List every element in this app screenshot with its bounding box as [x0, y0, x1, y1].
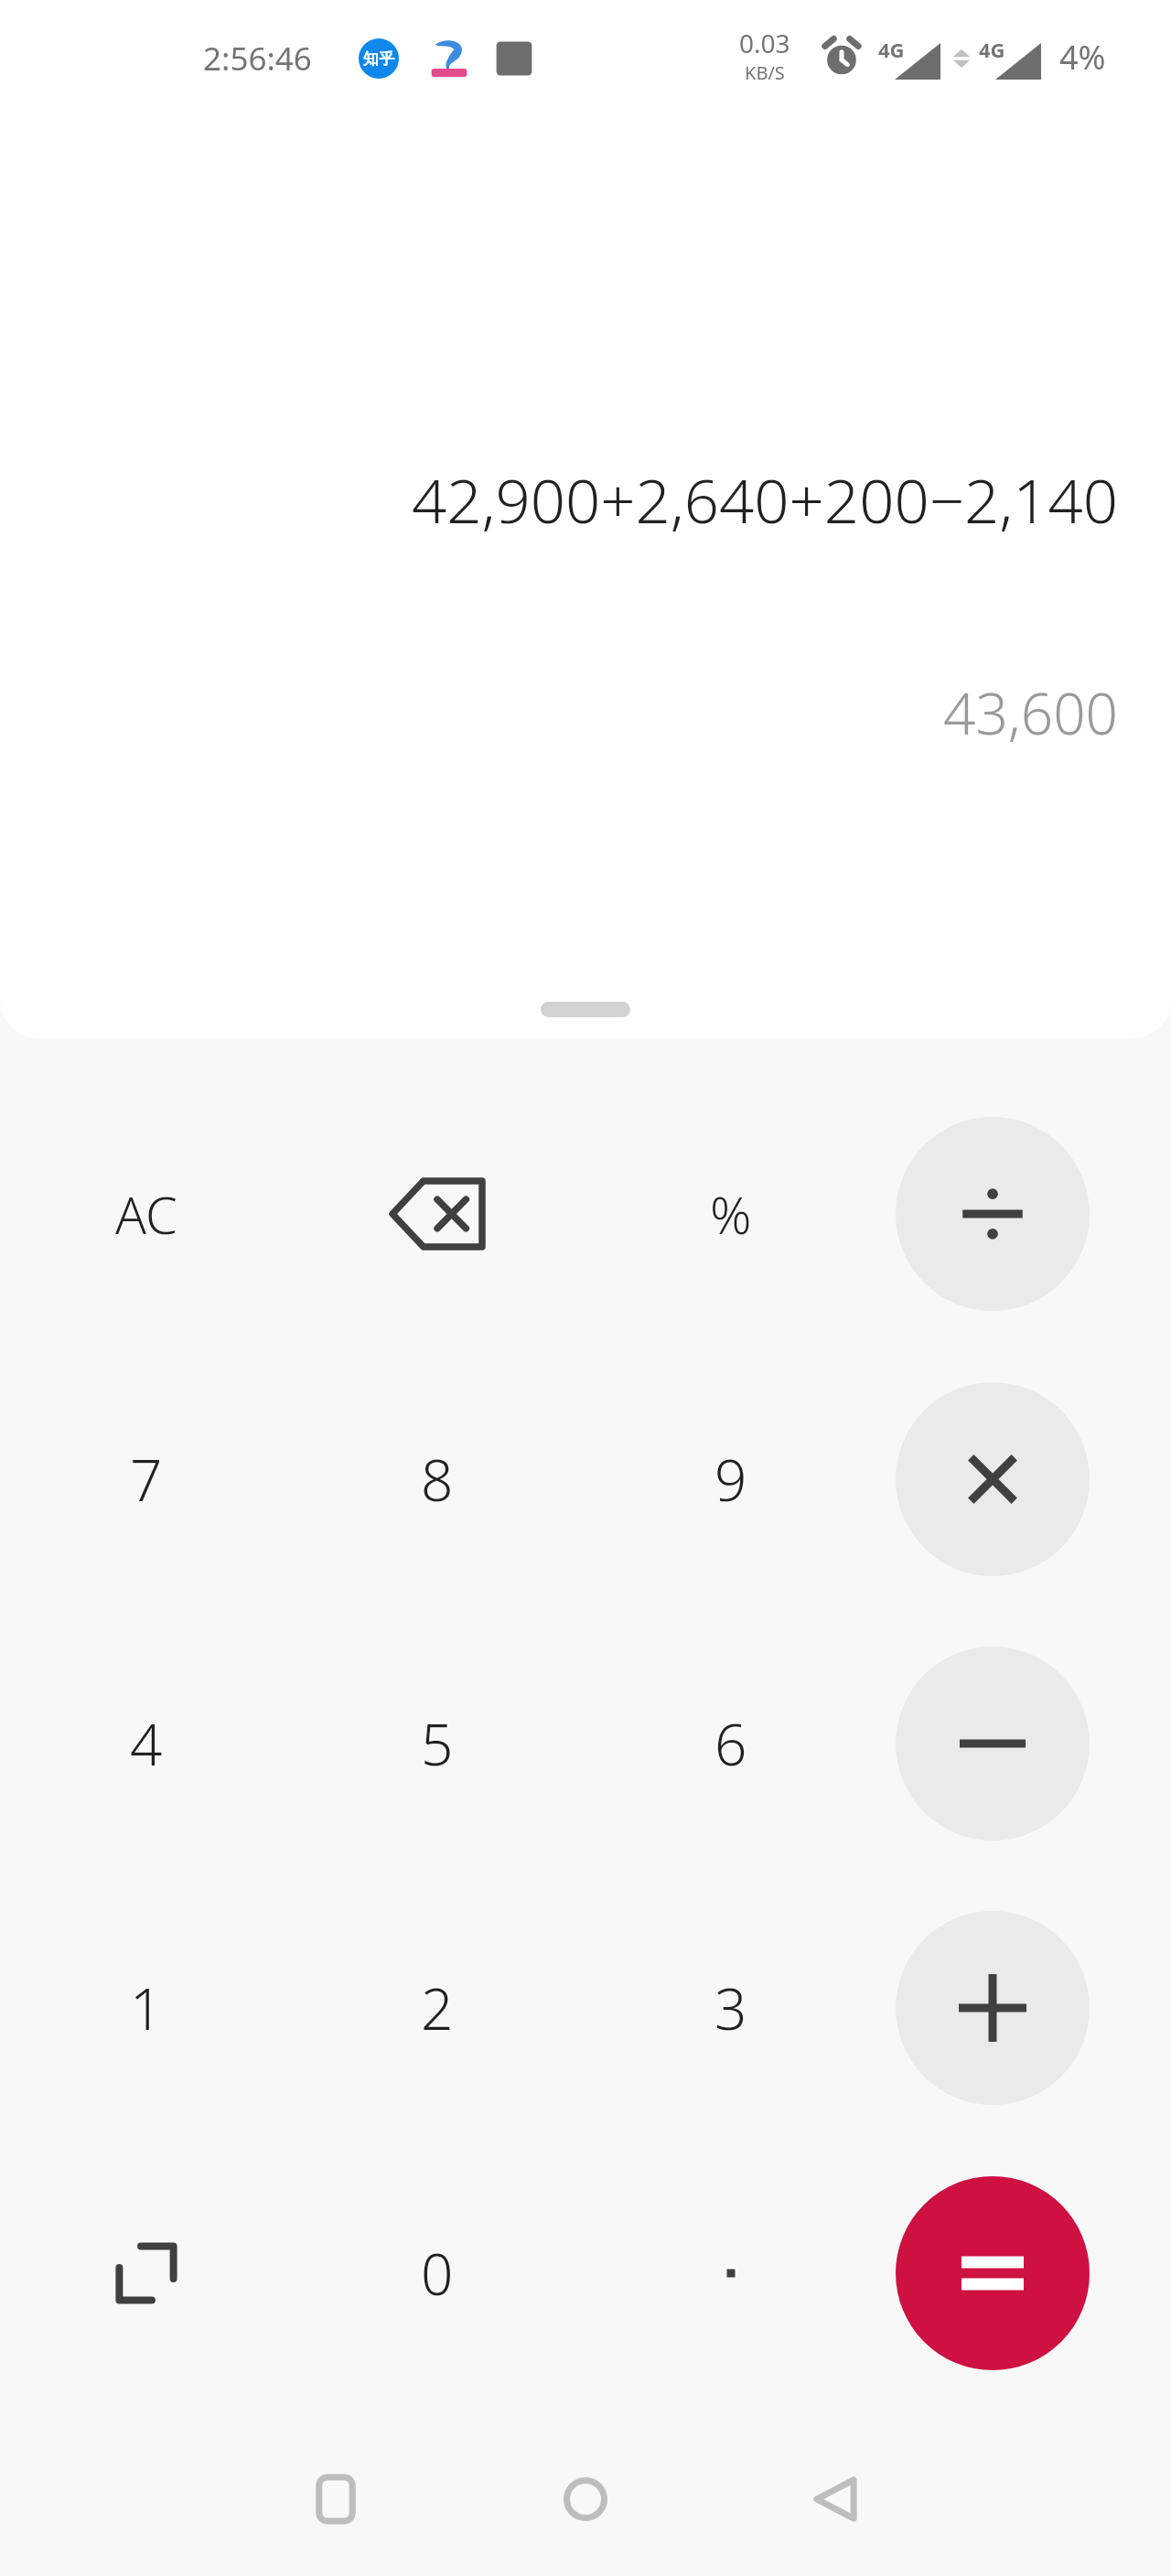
- button[interactable]: 2: [332, 1903, 543, 2113]
- button[interactable]: Decimal point: [626, 2168, 836, 2378]
- button[interactable]: %: [626, 1109, 836, 1319]
- staticText: 4G: [878, 36, 905, 63]
- staticText: 4%: [1059, 35, 1106, 80]
- button[interactable]: Recent apps: [285, 2449, 386, 2549]
- button[interactable]: 8: [332, 1374, 543, 1584]
- button[interactable]: 1: [41, 1903, 252, 2113]
- staticText: 知乎: [363, 49, 394, 69]
- button[interactable]: Expand: [41, 2168, 252, 2378]
- button[interactable]: AC: [41, 1109, 252, 1319]
- staticText: 1: [130, 1970, 163, 2046]
- button[interactable]: Backspace: [332, 1109, 543, 1319]
- button[interactable]: Divide: [896, 1117, 1090, 1311]
- button[interactable]: 9: [626, 1374, 836, 1584]
- staticText: 3: [714, 1970, 747, 2046]
- staticText: 42,900+2,640+200−2,140: [411, 457, 1118, 541]
- staticText: 4: [130, 1705, 163, 1782]
- staticText: 2:56:46: [203, 37, 312, 80]
- staticText: KB/S: [745, 60, 785, 85]
- staticText: 0.03: [739, 26, 790, 60]
- button[interactable]: Plus: [896, 1911, 1090, 2105]
- staticText: 7: [130, 1441, 163, 1518]
- button[interactable]: Home: [535, 2449, 636, 2549]
- staticText: 43,600: [943, 674, 1118, 751]
- button[interactable]: Back: [785, 2449, 886, 2549]
- button[interactable]: 3: [626, 1903, 836, 2113]
- button[interactable]: 7: [41, 1374, 252, 1584]
- staticText: 2: [421, 1970, 454, 2046]
- button[interactable]: 6: [626, 1638, 836, 1849]
- staticText: %: [710, 1179, 752, 1249]
- staticText: 8: [421, 1441, 454, 1518]
- staticText: 0: [421, 2235, 454, 2312]
- button[interactable]: 4: [41, 1638, 252, 1849]
- staticText: 6: [714, 1705, 747, 1782]
- button[interactable]: Multiply: [896, 1382, 1090, 1576]
- button[interactable]: 0: [332, 2168, 543, 2378]
- staticText: 9: [714, 1441, 747, 1518]
- button[interactable]: Minus: [896, 1647, 1090, 1841]
- button[interactable]: Equals: [896, 2176, 1090, 2370]
- button[interactable]: 5: [332, 1638, 543, 1849]
- staticText: 4G: [979, 36, 1005, 63]
- staticText: 5: [421, 1705, 454, 1782]
- staticText: AC: [115, 1179, 177, 1249]
